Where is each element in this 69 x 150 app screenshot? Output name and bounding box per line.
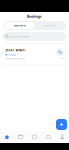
button[interactable]: Jhone Samuel [3,43,66,65]
staticText: One-Time [44,24,54,27]
staticText: Jhone Samuel [6,49,26,52]
button[interactable]: Home [0,131,14,143]
button[interactable]: Bookings [14,131,28,143]
button[interactable]: Wallet [41,131,55,143]
button[interactable]: Search for bookings [3,32,66,41]
staticText: Home Cleaning Weekly x12 [6,57,26,60]
staticText: In Cleaning [8,53,16,56]
staticText: Search for bookings [10,35,29,38]
button[interactable]: Chat [28,131,41,143]
staticText: Bookings [27,14,42,19]
staticText: Subscription [13,24,25,27]
staticText: $75 [60,57,63,59]
button[interactable]: New booking [56,119,67,130]
button[interactable]: Profile [55,131,69,143]
button[interactable]: Subscription [4,22,34,29]
button[interactable]: One-Time [34,22,64,29]
